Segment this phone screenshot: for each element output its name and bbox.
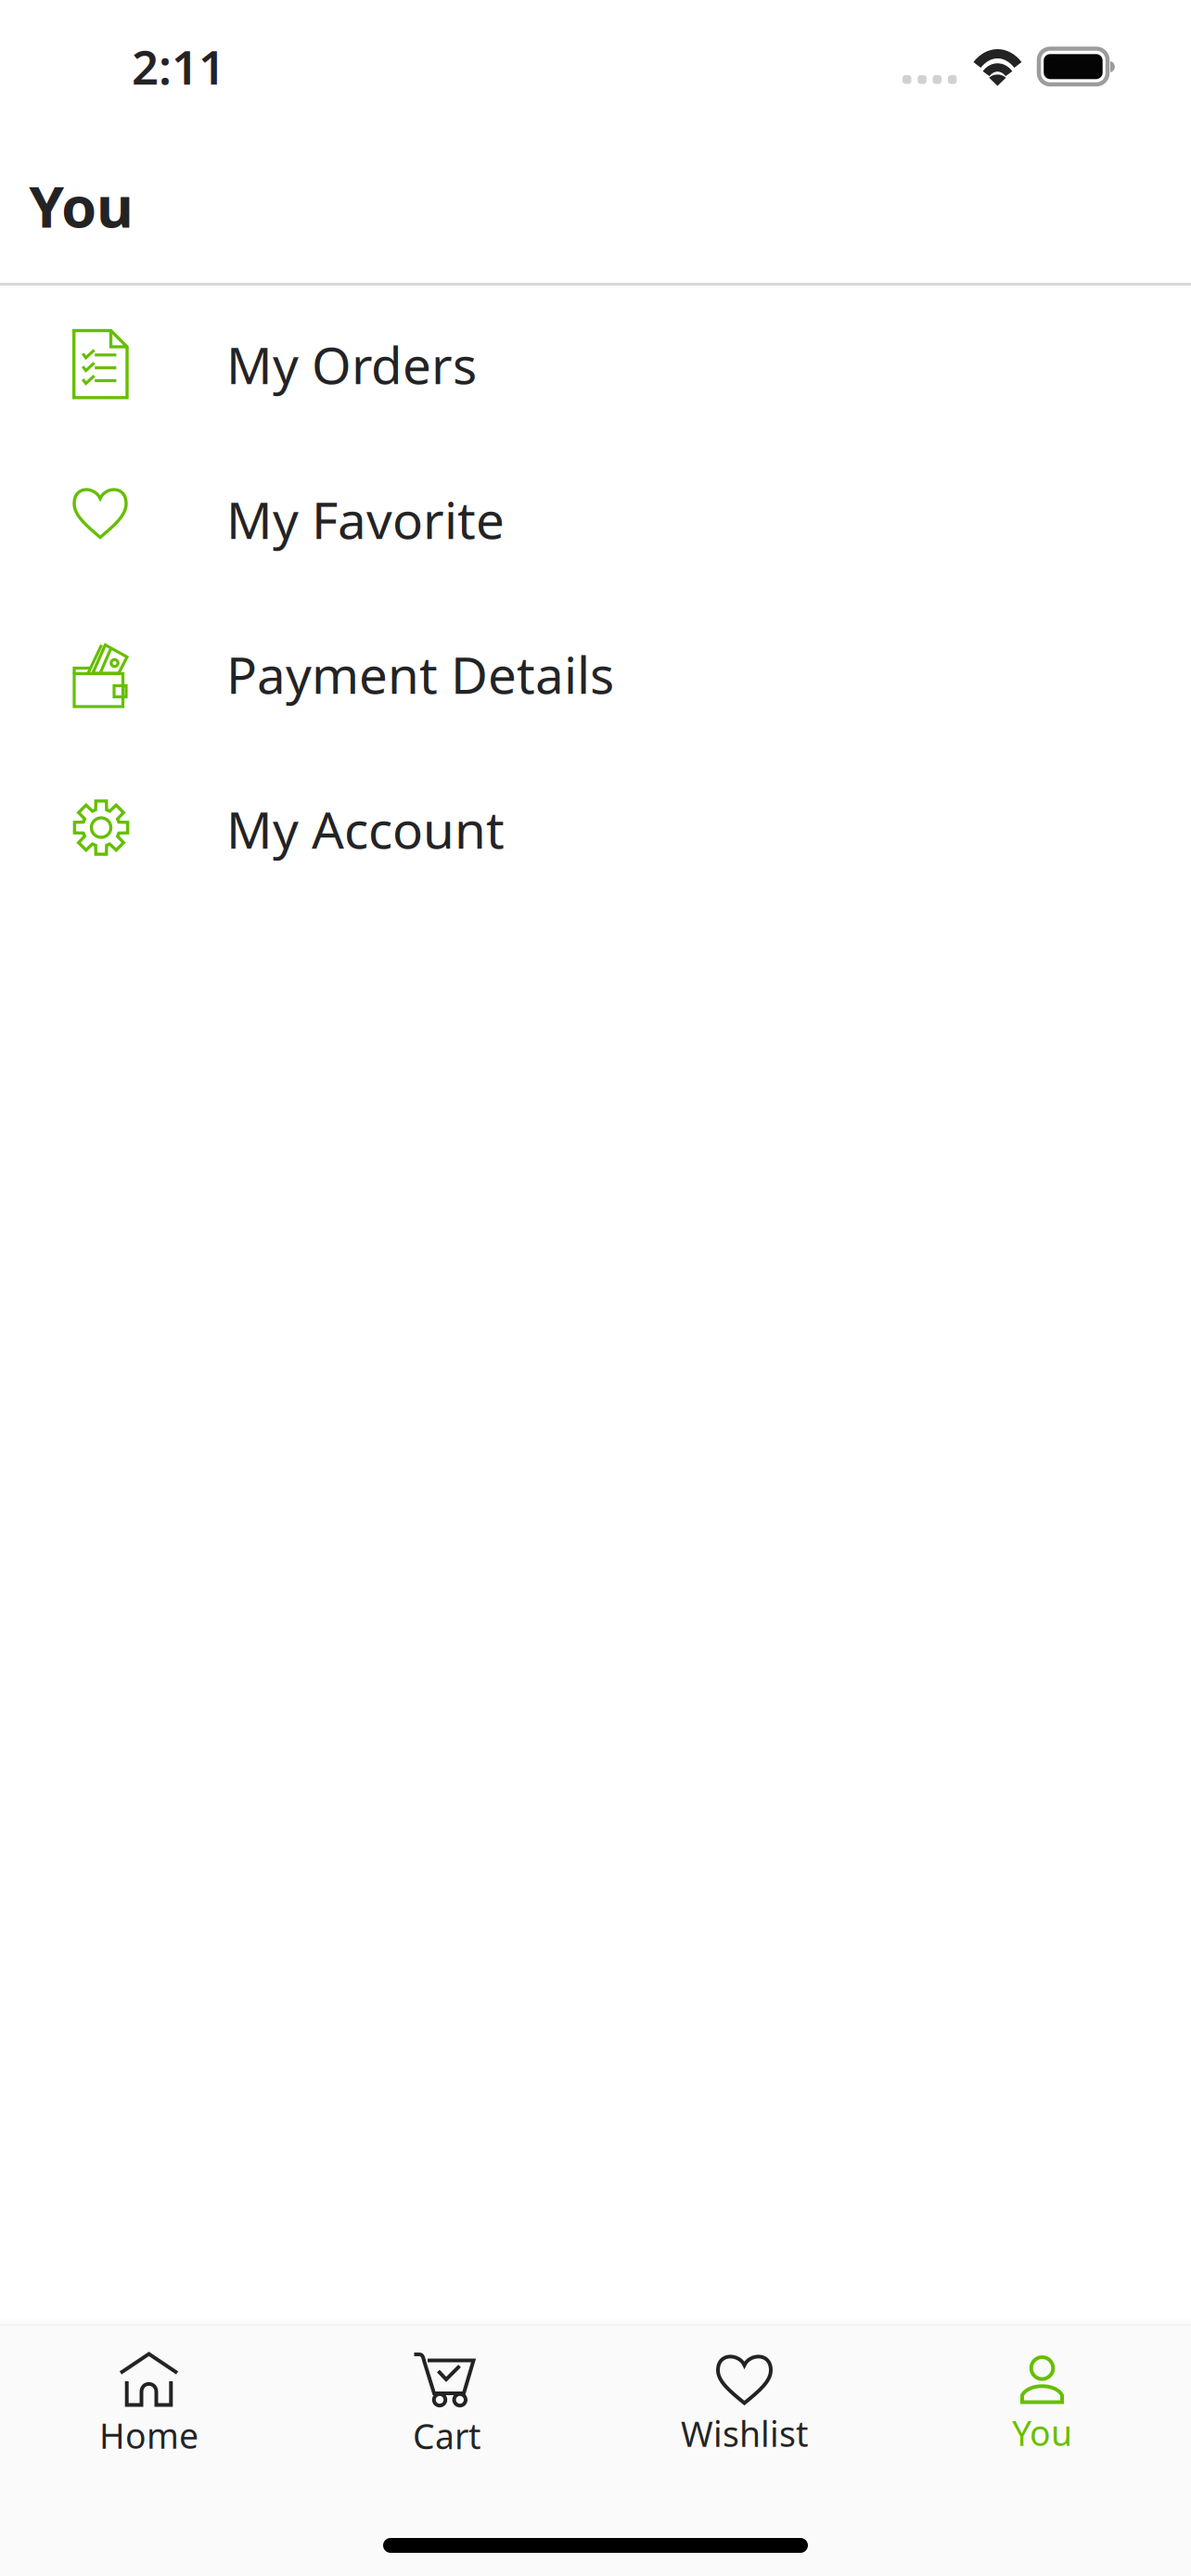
button[interactable]: Cart [298, 2352, 595, 2459]
staticText: My Orders [226, 331, 477, 398]
staticText: Home [99, 2412, 198, 2458]
button[interactable]: Home [0, 2352, 298, 2458]
staticText: Wishlist [681, 2410, 808, 2456]
button[interactable]: My Orders [0, 286, 1191, 440]
button[interactable]: My Account [0, 750, 1191, 905]
staticText: You [1012, 2410, 1072, 2456]
staticText: 2:11 [132, 35, 225, 98]
staticText: My Favorite [226, 486, 505, 553]
button[interactable]: Wishlist [595, 2354, 893, 2456]
button[interactable]: You [893, 2355, 1191, 2456]
button[interactable]: My Favorite [0, 440, 1191, 595]
staticText: Cart [413, 2413, 480, 2459]
staticText: My Account [226, 795, 505, 863]
staticText: You [29, 168, 134, 243]
staticText: Payment Details [226, 640, 614, 708]
button[interactable]: Payment Details [0, 595, 1191, 750]
